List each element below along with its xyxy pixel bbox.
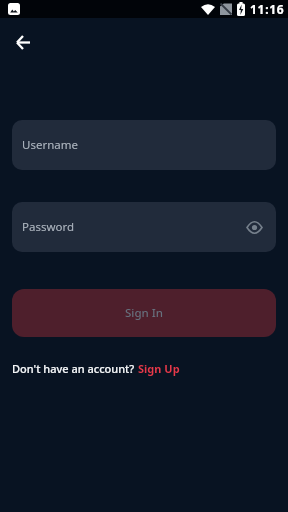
staticText: Sign Up <box>138 361 180 376</box>
button[interactable] <box>244 217 264 237</box>
button[interactable]: Sign Up <box>138 361 180 376</box>
staticText: Don't have an account? <box>12 361 135 376</box>
button[interactable]: Username <box>12 120 276 170</box>
button[interactable]: Sign In <box>12 289 276 337</box>
button[interactable]: Password <box>12 202 276 252</box>
button[interactable] <box>10 29 36 55</box>
staticText: 11:16 <box>250 1 285 17</box>
staticText: Sign In <box>125 305 164 321</box>
staticText: Username <box>22 137 78 153</box>
staticText: Password <box>22 219 75 235</box>
